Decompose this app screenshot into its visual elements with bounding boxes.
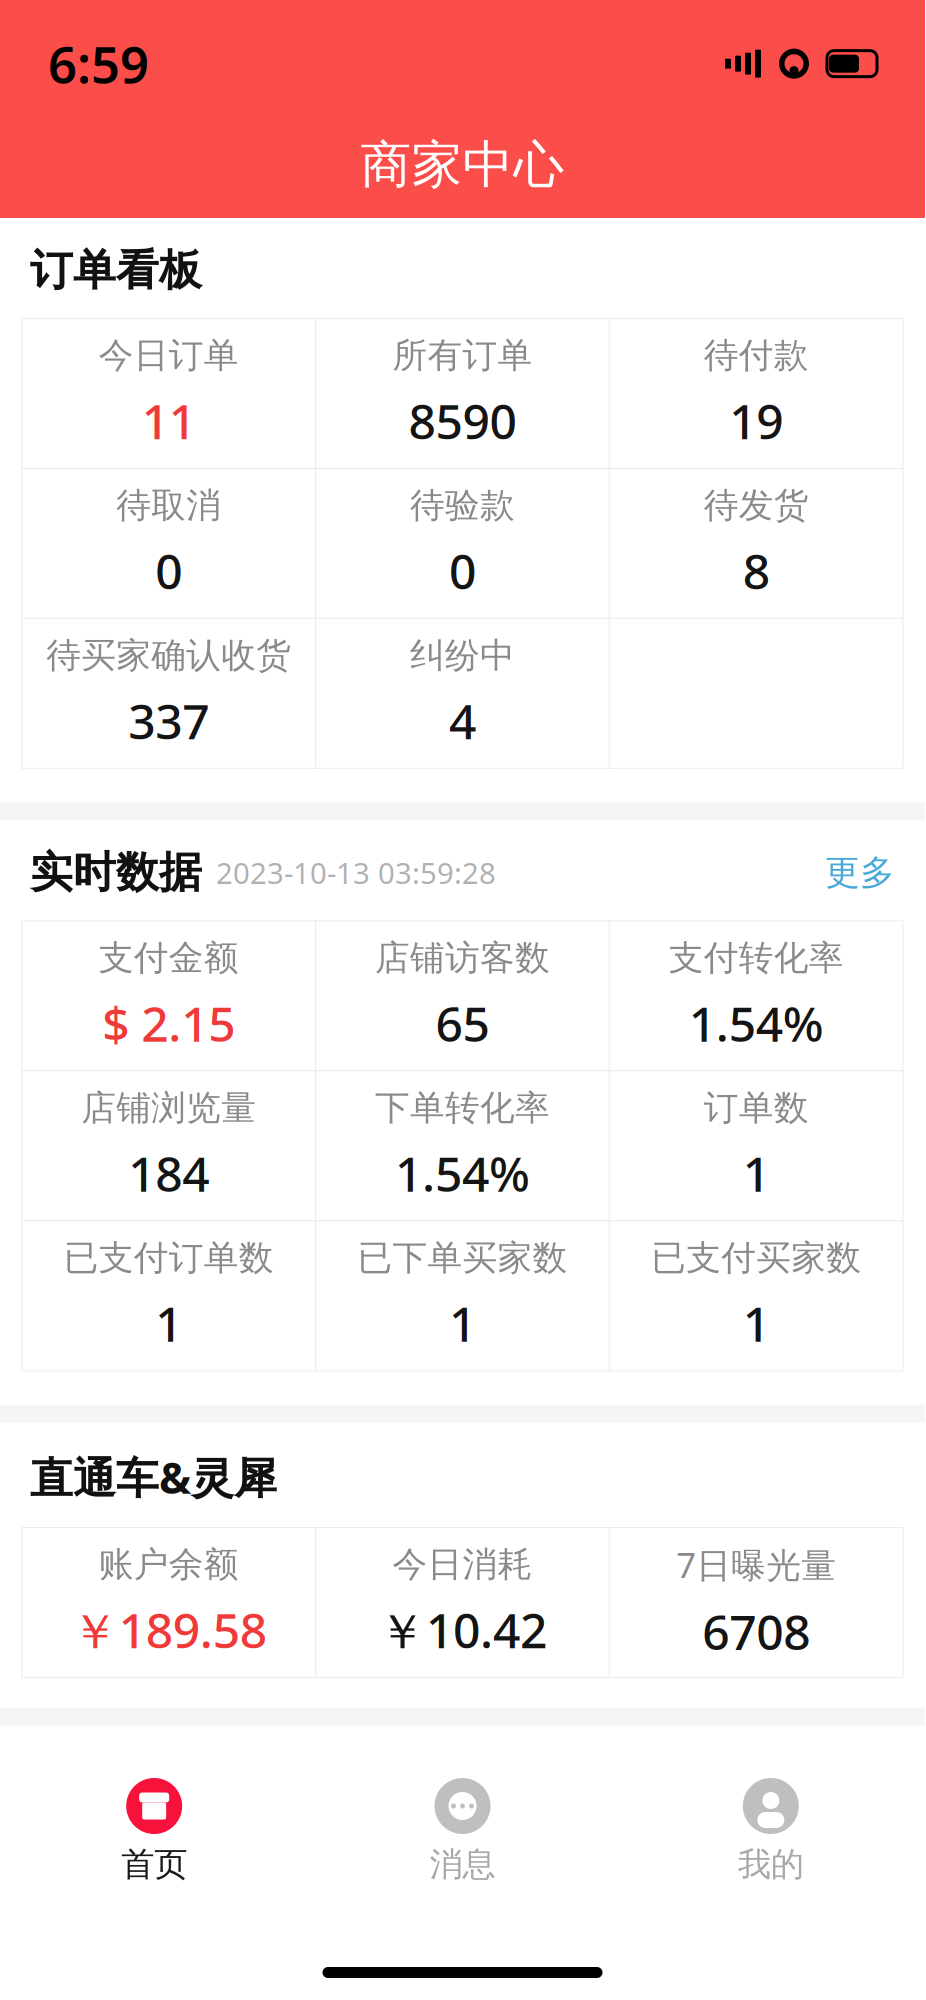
button[interactable]: 所有订单 <box>316 318 609 468</box>
button[interactable]: 已支付订单数 <box>22 1221 316 1371</box>
staticText: 7日曝光量 <box>676 1542 836 1588</box>
button[interactable]: 待买家确认收货 <box>22 618 316 768</box>
staticText: 1.54% <box>689 991 824 1055</box>
staticText: 已支付买家数 <box>651 1237 861 1279</box>
staticText: 订单看板 <box>30 244 202 296</box>
button[interactable]: 订单数 <box>609 1071 903 1221</box>
staticText: 纠纷中 <box>410 634 515 677</box>
staticText: 19 <box>729 389 783 452</box>
staticText: 待发货 <box>704 484 809 527</box>
button[interactable]: 店铺访客数 <box>316 921 609 1071</box>
button[interactable]: 已支付买家数 <box>609 1221 903 1371</box>
staticText: 8590 <box>408 389 516 452</box>
staticText: 商家中心 <box>360 134 564 196</box>
button[interactable]: 下单转化率 <box>316 1071 609 1221</box>
staticText: 今日消耗 <box>392 1543 532 1586</box>
staticText: 2023-10-13 03:59:28 <box>216 853 496 892</box>
button[interactable]: 纠纷中 <box>316 618 609 768</box>
button[interactable]: 店铺浏览量 <box>22 1071 316 1221</box>
button[interactable]: 账户余额 <box>22 1527 316 1677</box>
staticText: 8 <box>743 539 770 602</box>
staticText: 184 <box>128 1141 209 1205</box>
staticText: $ 2.15 <box>102 991 235 1055</box>
button[interactable]: 待验款 <box>316 468 609 618</box>
button[interactable]: 支付金额 <box>22 921 316 1071</box>
staticText: ￥10.42 <box>378 1598 547 1662</box>
staticText: 11 <box>142 389 196 452</box>
button[interactable]: 消息 <box>308 1764 617 1885</box>
button[interactable]: 更多 <box>825 851 895 894</box>
staticText: 4 <box>449 689 476 752</box>
staticText: 0 <box>155 539 182 602</box>
staticText: 0 <box>449 539 476 602</box>
staticText: 1 <box>743 1141 770 1205</box>
staticText: 1 <box>449 1291 476 1355</box>
staticText: 我的 <box>738 1844 804 1885</box>
button[interactable]: 待发货 <box>609 468 903 618</box>
staticText: 首页 <box>121 1844 187 1885</box>
staticText: 6708 <box>702 1600 810 1663</box>
button[interactable]: 待取消 <box>22 468 316 618</box>
staticText: 待取消 <box>116 484 221 527</box>
staticText: 65 <box>435 991 489 1055</box>
staticText: 待付款 <box>704 334 809 377</box>
staticText: 待买家确认收货 <box>46 634 291 677</box>
staticText: 订单数 <box>704 1087 809 1129</box>
staticText: 消息 <box>429 1844 495 1885</box>
staticText: 1.54% <box>395 1141 530 1205</box>
staticText: 待验款 <box>410 484 515 527</box>
button[interactable]: 今日消耗 <box>316 1527 609 1677</box>
button[interactable]: 7日曝光量 <box>609 1527 903 1677</box>
staticText: 更多 <box>825 851 895 894</box>
staticText: 1 <box>743 1291 770 1355</box>
button[interactable]: 今日订单 <box>22 318 316 468</box>
button[interactable]: 待付款 <box>609 318 903 468</box>
staticText: 所有订单 <box>392 334 532 377</box>
button[interactable]: 支付转化率 <box>609 921 903 1071</box>
staticText: 今日订单 <box>99 334 239 377</box>
staticText: 直通车&灵犀 <box>30 1449 277 1505</box>
staticText: 支付转化率 <box>669 937 844 979</box>
button[interactable]: 我的 <box>617 1764 925 1885</box>
staticText: 337 <box>128 689 209 752</box>
staticText: ￥189.58 <box>71 1598 267 1662</box>
staticText: 支付金额 <box>99 937 239 979</box>
staticText: 店铺访客数 <box>375 937 550 979</box>
button[interactable]: 已下单买家数 <box>316 1221 609 1371</box>
staticText: 已支付订单数 <box>64 1237 274 1279</box>
staticText: 1 <box>155 1291 182 1355</box>
staticText: 6:59 <box>48 30 149 97</box>
staticText: 实时数据 <box>30 846 202 899</box>
staticText: 店铺浏览量 <box>81 1087 256 1129</box>
button[interactable]: 首页 <box>0 1764 308 1885</box>
staticText: 下单转化率 <box>375 1087 550 1129</box>
staticText: 账户余额 <box>99 1543 239 1586</box>
staticText: 已下单买家数 <box>357 1237 567 1279</box>
